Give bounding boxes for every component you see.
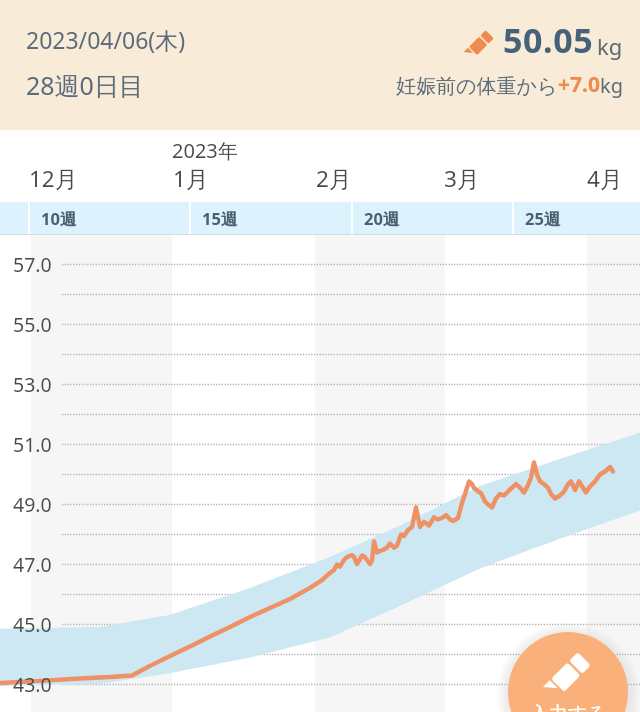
staticText: 45.0	[13, 611, 52, 638]
staticText: 10週	[41, 207, 77, 230]
staticText: 2023年	[172, 137, 238, 164]
staticText: 53.0	[13, 371, 52, 398]
staticText: +7.0	[558, 70, 600, 99]
staticText: 2月	[316, 163, 352, 194]
button[interactable]: 入力する	[508, 632, 628, 712]
staticText: 12月	[29, 163, 78, 194]
staticText: 妊娠前の体重から	[396, 74, 558, 99]
staticText: 入力する	[530, 702, 607, 712]
staticText: kg	[600, 72, 623, 99]
staticText: 2023/04/06(木)	[26, 24, 186, 55]
staticText: 57.0	[13, 251, 52, 278]
staticText: 1月	[173, 163, 209, 194]
staticText: 47.0	[13, 551, 52, 578]
staticText: 25週	[525, 207, 561, 230]
staticText: 15週	[202, 207, 238, 230]
staticText: 4月	[587, 163, 623, 194]
staticText: 3月	[444, 163, 480, 194]
staticText: 49.0	[13, 491, 52, 518]
staticText: 51.0	[13, 431, 52, 458]
staticText: 28週0日目	[26, 68, 144, 102]
staticText: 55.0	[13, 311, 52, 338]
staticText: 43.0	[13, 671, 52, 698]
staticText: kg	[597, 31, 623, 61]
staticText: 20週	[364, 207, 400, 230]
staticText: 50.05	[503, 17, 594, 63]
